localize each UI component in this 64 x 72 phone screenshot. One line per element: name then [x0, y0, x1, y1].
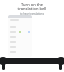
staticText: Turn on the translation bell: [0, 2, 64, 11]
staticText: to hear translations: [0, 12, 64, 16]
